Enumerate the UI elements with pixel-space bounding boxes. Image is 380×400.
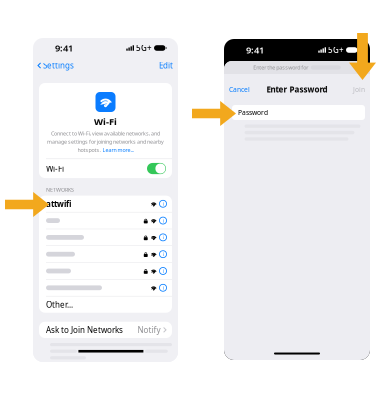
staticText: Other... [46,299,73,310]
staticText: i [162,267,163,274]
staticText: Edit [159,60,173,71]
button[interactable]: i [39,212,172,229]
staticText: Learn more... [102,146,133,154]
button[interactable]: Ask to Join Networks [39,322,172,338]
staticText: i [162,251,163,258]
staticText: hotspots. [77,146,100,154]
staticText: Settings [43,60,74,71]
button[interactable]: Wi-Fi [39,159,172,178]
staticText: Wi-Fi [46,163,64,174]
staticText: Notify [138,325,161,335]
button[interactable]: i [39,280,172,296]
button[interactable]: i [39,246,172,262]
button[interactable]: i [39,263,172,279]
button[interactable]: i [39,229,172,245]
staticText: Cancel [229,85,250,94]
staticText: Ask to Join Networks [46,325,123,335]
button[interactable]: Cancel [224,83,255,96]
staticText: Password [238,108,268,117]
staticText: Connect to Wi-Fi, view available network… [51,130,160,137]
staticText: 5G+ [136,43,152,53]
button[interactable]: Settings [33,58,78,73]
staticText: Join [353,85,365,94]
staticText: Enter the password for [253,64,308,71]
staticText: NETWORKS [46,186,74,193]
staticText: 9:41 [246,44,264,56]
staticText: i [162,200,163,207]
staticText: i [162,217,163,224]
staticText: manage settings for joining networks and… [47,138,164,145]
staticText: Enter Password [266,84,327,95]
button[interactable]: attwifi [39,196,172,212]
button[interactable]: Learn more... [102,146,133,154]
staticText: Wi-Fi [94,115,117,128]
staticText: attwifi [46,198,71,209]
staticText: i [162,234,163,241]
staticText: 5G+ [328,45,344,55]
staticText: i [162,284,163,291]
button[interactable]: Join [348,83,370,96]
staticText: 9:41 [55,42,73,54]
button[interactable]: Edit [154,58,178,73]
button[interactable]: Other... [39,296,172,313]
